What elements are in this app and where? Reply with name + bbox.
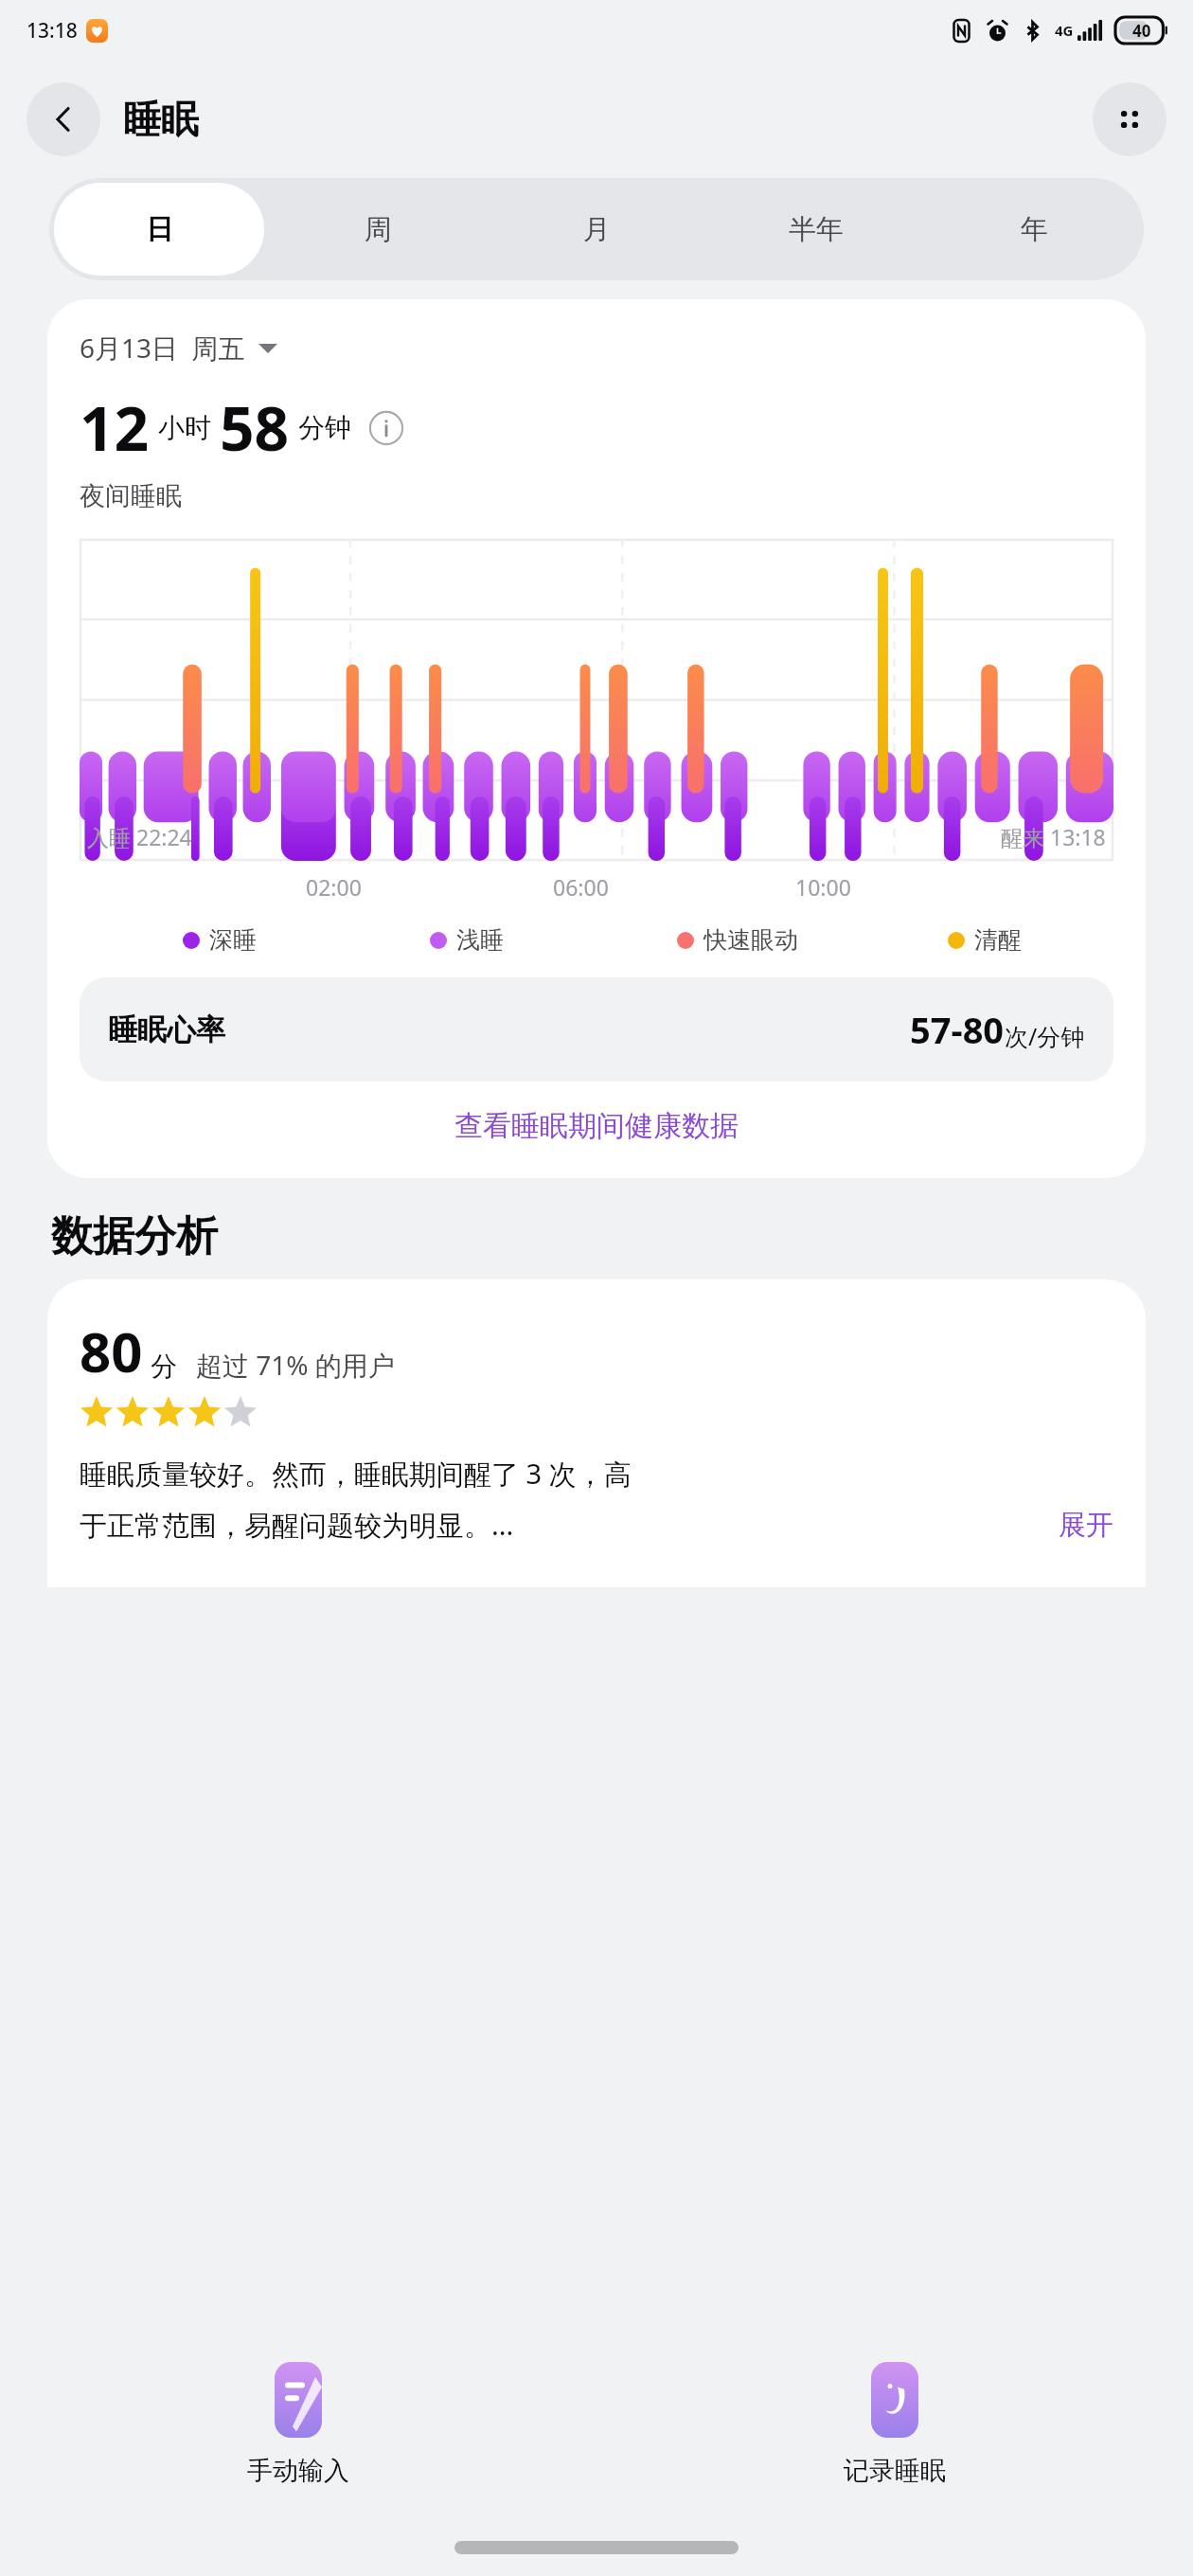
staticText: 分 xyxy=(151,1350,177,1383)
staticText: 12 xyxy=(80,386,150,469)
staticText: 快速眼动 xyxy=(703,925,798,955)
staticText: 年 xyxy=(1021,212,1048,247)
staticText: 58 xyxy=(220,386,290,469)
staticText: 睡眠心率 xyxy=(108,1011,225,1048)
staticText: 半年 xyxy=(789,212,844,247)
button[interactable]: 睡眠心率 xyxy=(80,977,1113,1082)
staticText: 4G xyxy=(1055,21,1074,40)
staticText: 醒来 13:18 xyxy=(1001,822,1106,851)
staticText: 深睡 xyxy=(209,925,257,955)
staticText: 13:18 xyxy=(27,17,78,45)
staticText: 日 xyxy=(146,212,173,247)
staticText: 分钟 xyxy=(298,411,351,444)
staticText: 57-80 xyxy=(910,1005,1005,1054)
staticText: 夜间睡眠 xyxy=(80,480,182,512)
button[interactable]: 日 xyxy=(54,183,264,276)
staticText: 数据分析 xyxy=(51,1210,218,1262)
staticText: 10:00 xyxy=(795,872,851,902)
staticText: 睡眠质量较好。然而，睡眠期间醒了 3 次，高 xyxy=(80,1455,632,1493)
staticText: 超过 71% 的用户 xyxy=(196,1347,395,1383)
button[interactable]: Info xyxy=(368,410,404,446)
button[interactable]: 6月13日 周五 xyxy=(80,330,277,366)
button[interactable]: 查看睡眠期间健康数据 xyxy=(80,1108,1113,1144)
staticText: 查看睡眠期间健康数据 xyxy=(454,1108,739,1144)
staticText: 睡眠 xyxy=(123,96,199,143)
staticText: 浅睡 xyxy=(456,925,504,955)
button[interactable]: Back xyxy=(27,82,100,156)
button[interactable]: 月 xyxy=(492,183,702,276)
button[interactable]: 记录睡眠 xyxy=(596,2330,1193,2519)
staticText: 展开 xyxy=(1059,1508,1113,1543)
button[interactable]: 周 xyxy=(274,183,483,276)
staticText: 小时 xyxy=(158,411,211,444)
staticText: 次/分钟 xyxy=(1005,1020,1085,1052)
staticText: 6月13日 周五 xyxy=(80,330,245,366)
staticText: 06:00 xyxy=(553,872,609,902)
staticText: 80 xyxy=(80,1314,143,1388)
staticText: 周 xyxy=(365,212,392,247)
staticText: 记录睡眠 xyxy=(844,2455,946,2487)
button[interactable]: 半年 xyxy=(711,183,920,276)
button[interactable]: More options xyxy=(1093,82,1166,156)
staticText: 手动输入 xyxy=(247,2455,349,2487)
button[interactable]: 手动输入 xyxy=(0,2330,596,2519)
staticText: 40 xyxy=(1132,20,1151,42)
button[interactable]: 展开 xyxy=(1059,1508,1113,1543)
staticText: 02:00 xyxy=(306,872,362,902)
button[interactable]: 年 xyxy=(930,183,1139,276)
staticText: 入睡 22:24 xyxy=(87,822,192,851)
staticText: 月 xyxy=(583,212,611,247)
staticText: 于正常范围，易醒问题较为明显。... xyxy=(80,1506,514,1544)
staticText: 清醒 xyxy=(974,925,1022,955)
